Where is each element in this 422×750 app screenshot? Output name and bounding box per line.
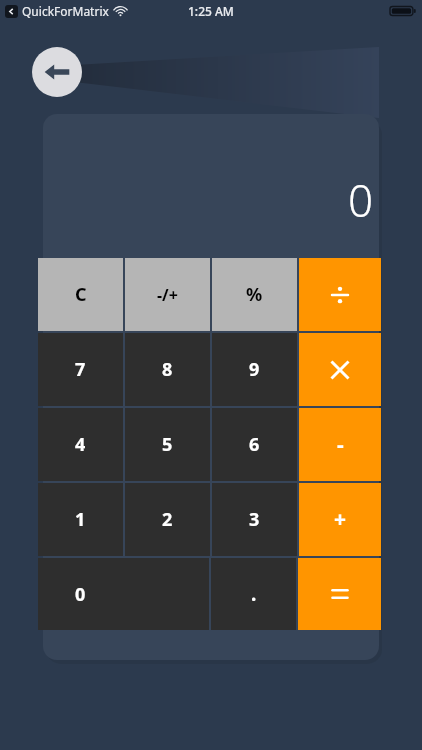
button[interactable]: 7 bbox=[38, 333, 123, 406]
staticText: C bbox=[75, 282, 87, 307]
staticText: 8 bbox=[162, 357, 173, 382]
staticText: - bbox=[337, 430, 344, 459]
staticText: 5 bbox=[162, 432, 173, 457]
staticText: QuickForMatrix bbox=[22, 3, 109, 19]
button[interactable]: 6 bbox=[212, 408, 297, 481]
staticText: 1 bbox=[75, 507, 86, 532]
button[interactable]: C bbox=[38, 258, 123, 331]
button[interactable]: 8 bbox=[125, 333, 210, 406]
staticText: . bbox=[251, 581, 257, 607]
button[interactable]: 1 bbox=[38, 483, 123, 556]
button[interactable]: 2 bbox=[125, 483, 210, 556]
button[interactable]: Back bbox=[32, 47, 82, 97]
staticText: 3 bbox=[249, 507, 260, 532]
staticText: 6 bbox=[249, 432, 260, 457]
staticText: + bbox=[334, 505, 347, 534]
staticText: -/+ bbox=[157, 284, 178, 306]
staticText: 1:25 AM bbox=[188, 3, 234, 19]
button[interactable] bbox=[299, 333, 381, 406]
button[interactable]: 3 bbox=[212, 483, 297, 556]
button[interactable]: - bbox=[299, 408, 381, 481]
button[interactable]: 5 bbox=[125, 408, 210, 481]
button[interactable]: % bbox=[212, 258, 297, 331]
staticText: % bbox=[246, 282, 263, 307]
staticText: 0 bbox=[75, 582, 86, 607]
button[interactable]: -/+ bbox=[125, 258, 210, 331]
button[interactable]: 9 bbox=[212, 333, 297, 406]
staticText: 7 bbox=[75, 357, 86, 382]
button[interactable] bbox=[298, 558, 381, 630]
staticText: 9 bbox=[249, 357, 260, 382]
button[interactable] bbox=[299, 258, 381, 331]
staticText: 2 bbox=[162, 507, 173, 532]
staticText: 4 bbox=[75, 432, 86, 457]
staticText: 0 bbox=[347, 170, 373, 230]
button[interactable]: 0 bbox=[38, 558, 209, 630]
button[interactable]: . bbox=[211, 558, 296, 630]
button[interactable]: + bbox=[299, 483, 381, 556]
button[interactable]: 4 bbox=[38, 408, 123, 481]
